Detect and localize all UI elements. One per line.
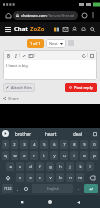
- button[interactable]: 1: [2, 140, 9, 149]
- button[interactable]: Account: [70, 25, 79, 34]
- button[interactable]: f: [36, 162, 44, 171]
- staticText: 0: [93, 142, 96, 147]
- button[interactable]: More options: [89, 11, 97, 19]
- staticText: x: [29, 175, 32, 180]
- button[interactable]: Undo: [80, 52, 87, 59]
- button[interactable]: Italic: [12, 52, 19, 59]
- button[interactable]: Attach files: [3, 83, 35, 92]
- button[interactable]: Drafts: [88, 52, 95, 59]
- button[interactable]: Share: [3, 96, 97, 101]
- button[interactable]: Space: [32, 184, 73, 193]
- button[interactable]: l: [86, 162, 94, 171]
- staticText: d: [29, 164, 32, 169]
- button[interactable]: g: [46, 162, 54, 171]
- button[interactable]: Post reply: [65, 83, 97, 92]
- staticText: u: [63, 153, 66, 158]
- button[interactable]: p: [90, 151, 98, 160]
- button[interactable]: Comma: [14, 184, 21, 193]
- button[interactable]: 9: [80, 140, 88, 149]
- button[interactable]: Notifications: [79, 25, 88, 34]
- button[interactable]: heart: [37, 128, 64, 139]
- button[interactable]: Link: [20, 52, 27, 59]
- button[interactable]: e: [20, 151, 28, 160]
- button[interactable]: Messages: [61, 25, 70, 34]
- staticText: /forum/thread: [47, 13, 75, 18]
- staticText: 1: [4, 142, 7, 147]
- button[interactable]: Bold: [5, 52, 12, 59]
- button[interactable]: Search: [88, 25, 97, 34]
- button[interactable]: 3: [20, 140, 28, 149]
- staticText: 9: [83, 142, 86, 147]
- button[interactable]: Period: [74, 184, 83, 193]
- button[interactable]: 8: [70, 140, 78, 149]
- button[interactable]: z: [16, 173, 24, 182]
- staticText: I: [15, 53, 17, 59]
- button[interactable]: Reload: [80, 11, 89, 20]
- button[interactable]: Menu: [3, 25, 12, 34]
- button[interactable]: b: [56, 173, 64, 182]
- button[interactable]: 6: [50, 140, 58, 149]
- staticText: q: [4, 153, 7, 158]
- button[interactable]: v: [46, 173, 54, 182]
- button[interactable]: 0: [90, 140, 98, 149]
- button[interactable]: Backspace: [86, 173, 98, 182]
- button[interactable]: Next: [46, 39, 66, 48]
- staticText: o: [83, 153, 86, 158]
- button[interactable]: Chat: [14, 25, 45, 33]
- staticText: Next: [49, 41, 58, 46]
- button[interactable]: u: [60, 151, 68, 160]
- staticText: m: [78, 175, 82, 180]
- button[interactable]: w: [11, 151, 18, 160]
- button[interactable]: Clipboard: [91, 130, 98, 137]
- button[interactable]: brother: [9, 128, 37, 139]
- staticText: c: [39, 175, 41, 180]
- button[interactable]: Emoji: [21, 184, 31, 193]
- button[interactable]: q: [2, 151, 9, 160]
- button[interactable]: m: [76, 173, 84, 182]
- button[interactable]: 1 of 1: [27, 39, 44, 48]
- button[interactable]: Back: [16, 196, 28, 208]
- button[interactable]: deal: [64, 128, 91, 139]
- staticText: k: [79, 164, 82, 169]
- button[interactable]: h: [56, 162, 64, 171]
- button[interactable]: Voice typing: [2, 130, 9, 137]
- button[interactable]: 5: [40, 140, 48, 149]
- staticText: Share: [8, 96, 19, 101]
- button[interactable]: ?123: [2, 184, 13, 193]
- staticText: b: [59, 175, 62, 180]
- button[interactable]: i: [70, 151, 78, 160]
- staticText: a: [9, 164, 12, 169]
- button[interactable]: o: [80, 151, 88, 160]
- staticText: 5: [43, 142, 46, 147]
- button[interactable]: chatzozo.com: [13, 11, 78, 20]
- staticText: y: [53, 153, 56, 158]
- staticText: s: [19, 164, 21, 169]
- button[interactable]: n: [66, 173, 74, 182]
- staticText: i: [73, 153, 75, 158]
- button[interactable]: c: [36, 173, 44, 182]
- staticText: 8: [73, 142, 76, 147]
- button[interactable]: d: [26, 162, 34, 171]
- button[interactable]: y: [50, 151, 58, 160]
- button[interactable]: Home: [3, 10, 13, 20]
- staticText: ?123: [4, 186, 12, 191]
- button[interactable]: 4: [30, 140, 38, 149]
- button[interactable]: Shift: [2, 173, 14, 182]
- staticText: t: [43, 153, 45, 158]
- button[interactable]: k: [76, 162, 84, 171]
- button[interactable]: 2: [11, 140, 18, 149]
- button[interactable]: Recent apps: [72, 196, 84, 208]
- button[interactable]: x: [26, 173, 34, 182]
- button[interactable]: Insert image: [27, 52, 34, 59]
- button[interactable]: 7: [60, 140, 68, 149]
- button[interactable]: t: [40, 151, 48, 160]
- button[interactable]: a: [6, 162, 14, 171]
- button[interactable]: Home: [44, 196, 56, 208]
- button[interactable]: j: [66, 162, 74, 171]
- staticText: n: [69, 175, 72, 180]
- button[interactable]: r: [30, 151, 38, 160]
- button[interactable]: Chat rooms: [52, 25, 61, 34]
- button[interactable]: Enter: [84, 184, 98, 193]
- button[interactable]: s: [16, 162, 24, 171]
